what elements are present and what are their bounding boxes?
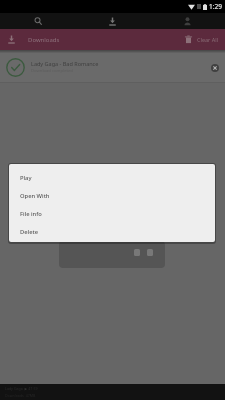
staticText: Lady Gaga - Bad Romance [31, 60, 99, 67]
button[interactable]: Clear All [181, 35, 222, 44]
staticText: Clear All [197, 36, 219, 43]
button[interactable]: Downloads [75, 13, 150, 29]
staticText: 1:29 [209, 2, 222, 11]
staticText: Lady Gaga ▶ 47:59 [5, 386, 38, 391]
staticText: Downloads 47MB [5, 393, 36, 398]
button[interactable]: Open With [9, 187, 215, 205]
staticText: Open With [20, 192, 50, 200]
staticText: Delete [20, 228, 39, 236]
staticText: Play [20, 174, 32, 182]
button[interactable]: Lady Gaga - Bad Romance [0, 53, 225, 83]
button[interactable]: Play [9, 169, 215, 187]
button[interactable]: Search [0, 13, 75, 29]
button[interactable]: Remove download [209, 62, 220, 73]
button[interactable]: Account [150, 13, 225, 29]
button[interactable]: Delete [9, 223, 215, 241]
staticText: Downloads [28, 36, 60, 44]
button[interactable]: File info [9, 205, 215, 223]
staticText: File info [20, 210, 42, 218]
